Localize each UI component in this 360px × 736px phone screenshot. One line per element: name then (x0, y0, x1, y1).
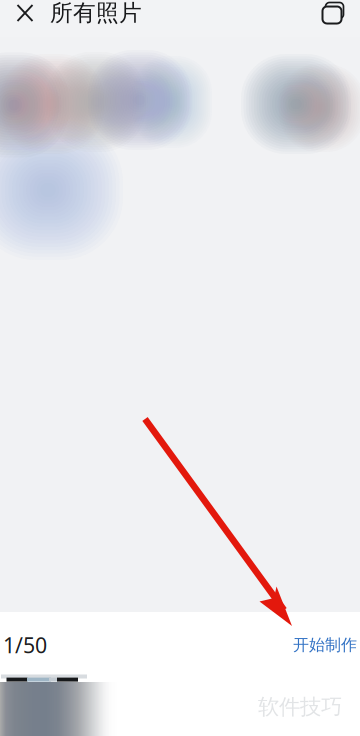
staticText: 所有照片 (50, 0, 142, 27)
button[interactable]: 开始制作 (287, 627, 360, 663)
staticText: 1/50 (3, 631, 47, 659)
staticText: 软件技巧 (258, 694, 342, 720)
staticText: 开始制作 (293, 635, 357, 655)
button[interactable]: Albums (313, 0, 353, 32)
button[interactable]: Close (3, 0, 47, 31)
